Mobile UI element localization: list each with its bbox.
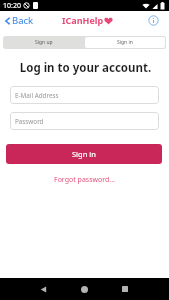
staticText: Sign up [35,39,53,46]
button[interactable]: Password [10,112,159,130]
staticText: 10:20 [3,1,21,11]
button[interactable]: Back [3,12,36,29]
button[interactable]: Home [75,278,93,300]
button[interactable]: E-Mail Address [10,86,159,104]
button[interactable]: Forgot password... [52,173,117,187]
staticText: ICanHelp [62,14,104,26]
staticText: E-Mail Address [15,91,59,100]
staticText: Back [12,14,34,27]
staticText: Sign in [117,39,133,46]
staticText: Log in to your account. [1,60,169,76]
button[interactable]: Sign in [85,37,165,48]
button[interactable]: Back [34,278,52,300]
button[interactable]: Sign in [6,144,162,164]
staticText: Sign in [72,149,96,159]
button[interactable]: Info [147,14,160,27]
button[interactable]: Sign up [3,36,84,49]
staticText: Password [15,117,44,126]
button[interactable]: Recent apps [116,278,134,300]
